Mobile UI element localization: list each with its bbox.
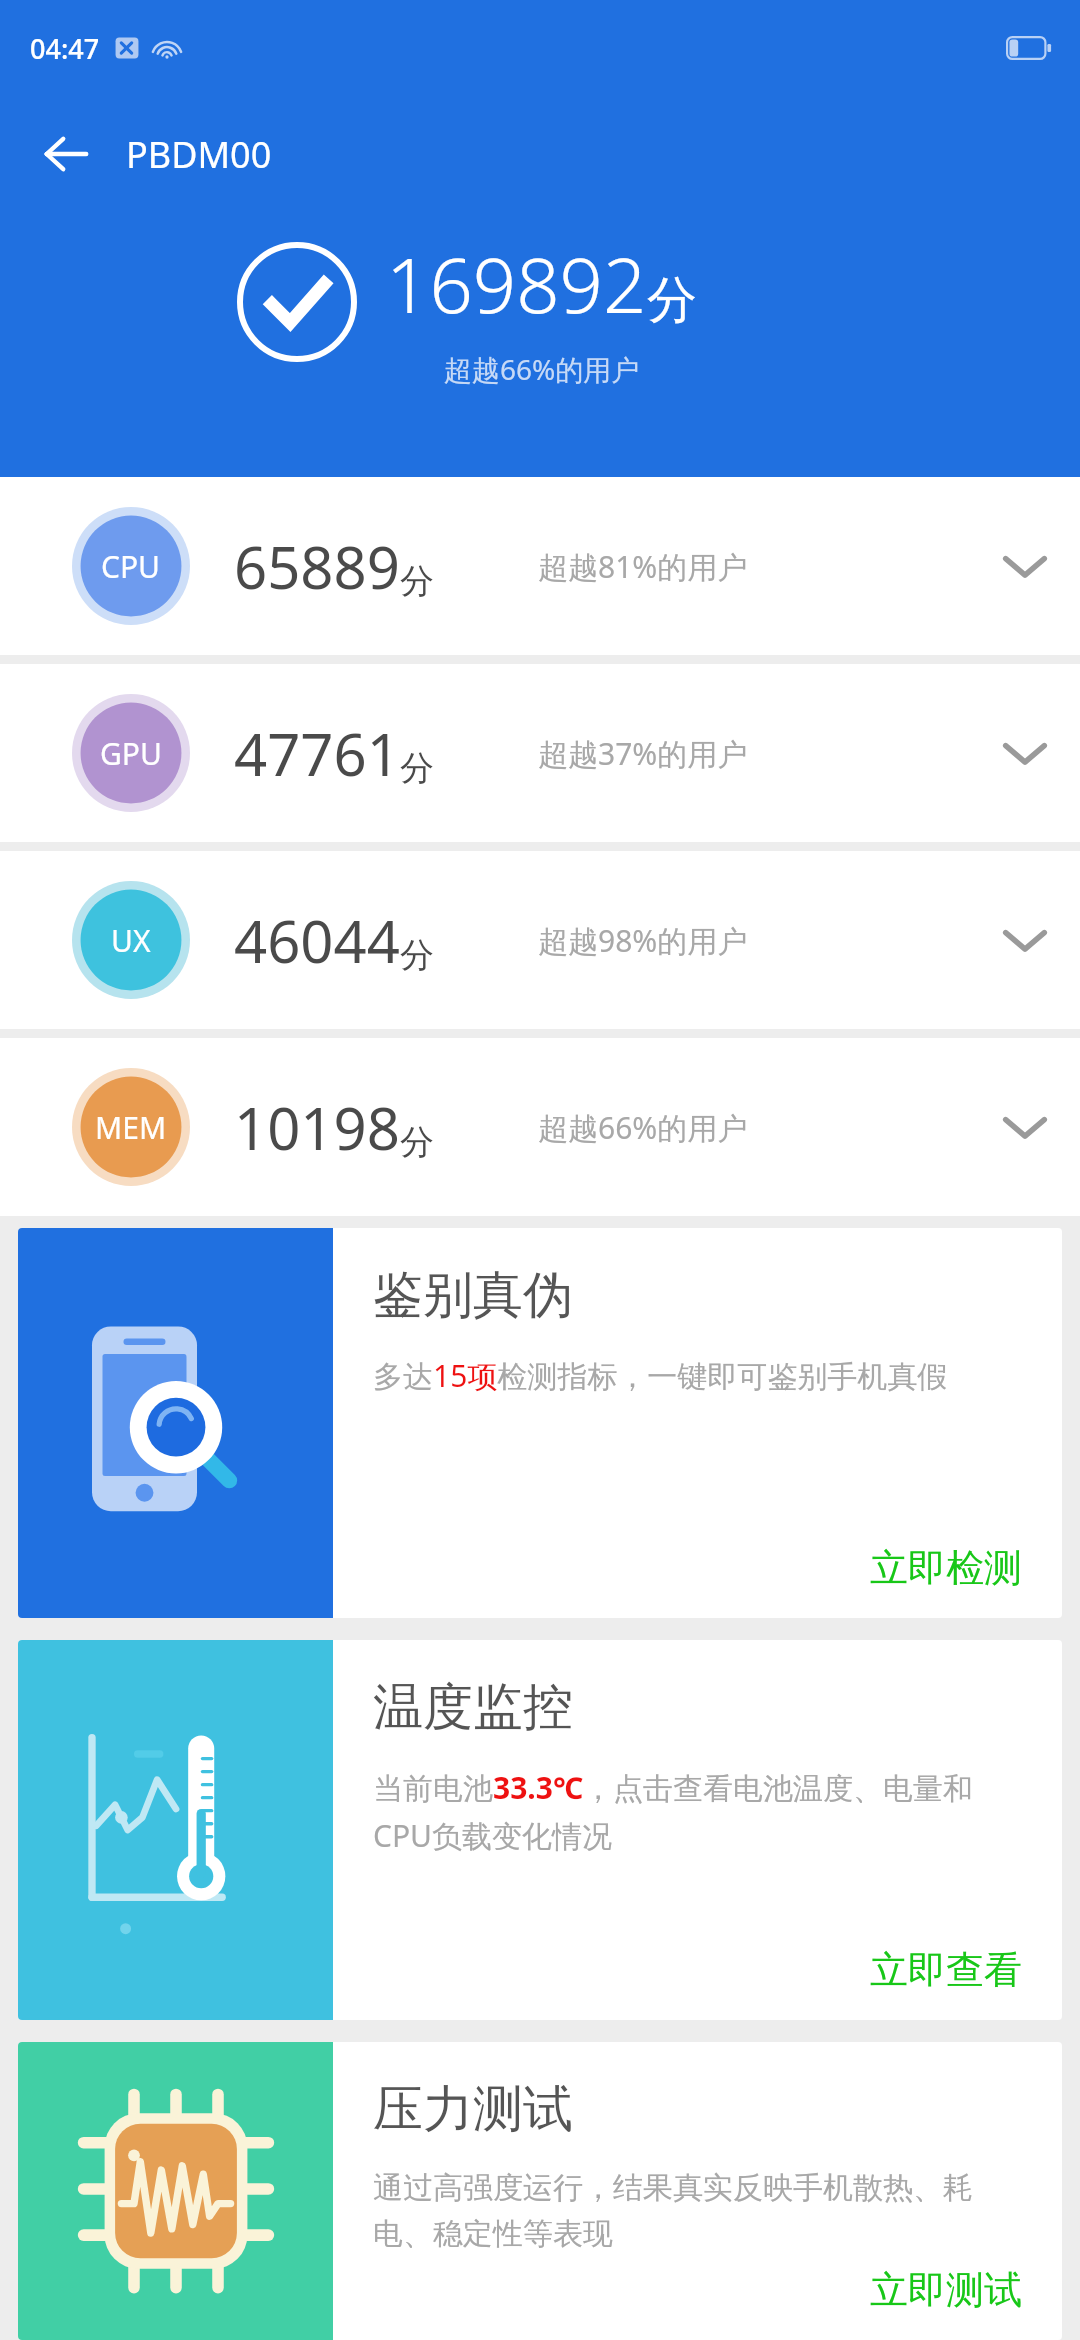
staticText: MEM (95, 1107, 167, 1148)
staticText: 超越98%的用户 (538, 920, 748, 961)
staticText: 分 (400, 1121, 434, 1164)
staticText: 超越66%的用户 (538, 1107, 748, 1148)
staticText: 分 (400, 747, 434, 790)
button[interactable]: Expand CPU (970, 511, 1080, 621)
staticText: 04:47 (30, 30, 100, 67)
staticText: 立即查看 (870, 1946, 1022, 1994)
button[interactable]: 温度监控 (18, 1640, 1062, 2020)
staticText: 压力测试 (373, 2078, 573, 2141)
button[interactable]: MEM (0, 1038, 1080, 1216)
button[interactable]: GPU (0, 664, 1080, 842)
button[interactable]: Expand GPU (970, 698, 1080, 808)
staticText: UX (111, 920, 151, 961)
staticText: 通过高强度运行，结果真实反映手机散热、耗电、稳定性等表现 (373, 2169, 1028, 2253)
staticText: 立即测试 (870, 2266, 1022, 2314)
button[interactable]: Back (24, 112, 108, 196)
button[interactable]: UX (0, 851, 1080, 1029)
staticText: 分 (400, 934, 434, 977)
button[interactable]: 立即查看 (864, 1940, 1028, 2000)
staticText: PBDM00 (126, 130, 272, 179)
staticText: CPU (101, 546, 161, 587)
staticText: 10198 (234, 1088, 400, 1167)
button[interactable]: 压力测试 (18, 2042, 1062, 2340)
staticText: 65889 (234, 527, 400, 606)
button[interactable]: Expand MEM (970, 1072, 1080, 1182)
staticText: GPU (100, 733, 162, 774)
button[interactable]: CPU (0, 477, 1080, 655)
staticText: 当前电池33.3℃，点击查看电池温度、电量和CPU负载变化情况 (373, 1767, 1028, 1856)
staticText: 分 (400, 560, 434, 603)
staticText: 超越81%的用户 (538, 546, 748, 587)
staticText: 多达15项检测指标，一键即可鉴别手机真假 (373, 1355, 948, 1396)
button[interactable]: Expand UX (970, 885, 1080, 995)
staticText: 超越66%的用户 (444, 350, 640, 388)
staticText: 立即检测 (870, 1544, 1022, 1592)
staticText: 169892 (386, 232, 647, 336)
button[interactable]: 立即检测 (864, 1538, 1028, 1598)
staticText: 分 (647, 269, 697, 332)
staticText: 温度监控 (373, 1676, 573, 1739)
staticText: 47761 (234, 714, 400, 793)
staticText: 鉴别真伪 (373, 1264, 573, 1327)
button[interactable]: 立即测试 (864, 2260, 1028, 2320)
staticText: 46044 (234, 901, 400, 980)
staticText: 超越37%的用户 (538, 733, 748, 774)
button[interactable]: 鉴别真伪 (18, 1228, 1062, 1618)
